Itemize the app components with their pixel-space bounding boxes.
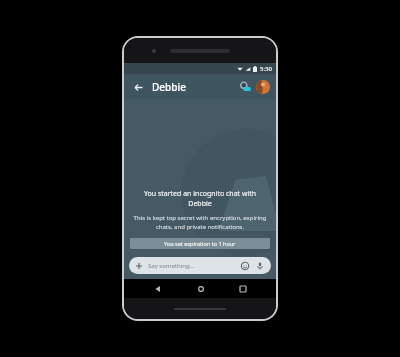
staticText: Debbie — [152, 80, 186, 94]
button[interactable]: Recent apps — [233, 279, 252, 298]
staticText: This is kept top secret with encryption,… — [133, 214, 267, 231]
button[interactable]: Back — [148, 279, 167, 298]
button[interactable]: Profile — [256, 80, 270, 94]
button[interactable]: Home — [191, 279, 210, 298]
button[interactable]: Emoji — [240, 261, 250, 271]
staticText: 5:30 — [260, 65, 272, 73]
staticText: You started an incognito chat with Debbi… — [133, 189, 267, 209]
button[interactable]: Voice message — [255, 261, 265, 271]
staticText: Say something... — [148, 262, 195, 270]
button[interactable]: Incognito mode — [237, 79, 252, 94]
button[interactable]: You set expiration to 1 hour — [130, 238, 270, 249]
button[interactable]: Back — [130, 79, 146, 95]
staticText: You set expiration to 1 hour — [164, 240, 236, 247]
button[interactable]: Say something... — [129, 257, 271, 274]
